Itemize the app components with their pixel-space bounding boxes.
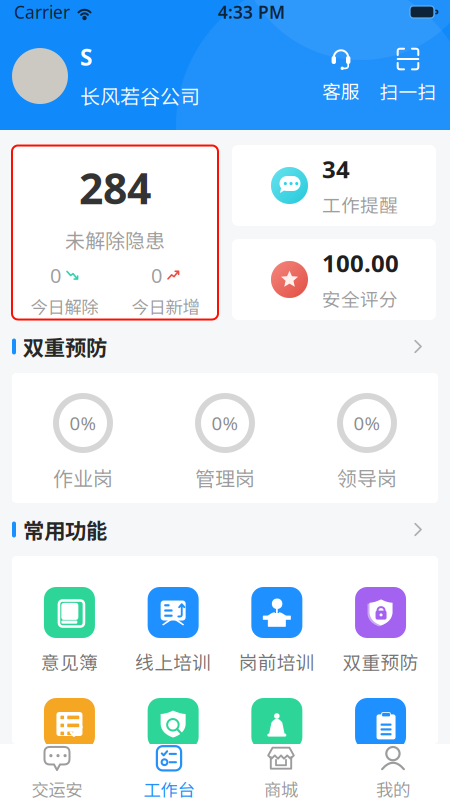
staticText: 4:33 PM [218, 0, 285, 23]
staticText: 双重预防 [23, 331, 107, 362]
button[interactable]: 我的 [337, 744, 449, 800]
button[interactable]: 双重预防 [329, 587, 432, 675]
staticText: 0% [353, 411, 380, 435]
staticText: 安全评分 [322, 285, 398, 312]
staticText: 安全检查 [343, 759, 419, 786]
staticText: 工作台 [143, 776, 194, 800]
staticText: 意见反馈 [31, 759, 107, 786]
staticText: 未解除隐患 [65, 225, 165, 254]
staticText: S [80, 42, 92, 72]
staticText: 商城 [264, 776, 298, 800]
staticText: 100.00 [322, 247, 399, 279]
button[interactable]: 应急管理 [225, 698, 329, 786]
button[interactable]: 商城 [225, 744, 337, 800]
staticText: 客服 [322, 77, 360, 104]
staticText: 0% [211, 411, 238, 435]
button[interactable]: 隐患排查 [121, 698, 225, 786]
staticText: 工作提醒 [322, 191, 398, 218]
button[interactable]: 意见簿 [18, 587, 121, 675]
staticText: 交运安 [31, 776, 82, 800]
staticText: 长风若谷公司 [80, 81, 200, 110]
button[interactable]: 工作台 [113, 744, 225, 800]
staticText: 34 [322, 153, 350, 185]
button[interactable]: 284 [12, 145, 218, 319]
button[interactable]: 线上培训 [121, 587, 225, 675]
staticText: 领导岗 [337, 463, 397, 492]
staticText: 0% [69, 411, 96, 435]
staticText: 作业岗 [53, 463, 113, 492]
staticText: 扫一扫 [379, 77, 436, 104]
staticText: 0 [151, 262, 162, 289]
staticText: 284 [79, 159, 151, 216]
staticText: 应急管理 [239, 759, 315, 786]
button[interactable]: 安全检查 [329, 698, 432, 786]
button[interactable]: 岗前培训 [225, 587, 329, 675]
staticText: 今日解除 [30, 293, 98, 319]
staticText: 我的 [376, 776, 410, 800]
button[interactable]: 双重预防 [0, 320, 450, 373]
staticText: 隐患排查 [135, 759, 211, 786]
button[interactable]: 常用功能 [0, 503, 450, 556]
staticText: 岗前培训 [239, 648, 315, 675]
staticText: 线上培训 [135, 648, 211, 675]
button[interactable]: 交运安 [1, 744, 113, 800]
staticText: 今日新增 [131, 293, 199, 319]
button[interactable]: 意见反馈 [18, 698, 121, 786]
button[interactable]: 100.00 [232, 239, 436, 320]
button[interactable]: 34 [232, 145, 436, 226]
button[interactable]: 客服 [318, 48, 364, 104]
staticText: 常用功能 [23, 514, 107, 545]
staticText: 双重预防 [343, 648, 419, 675]
button[interactable]: 扫一扫 [378, 47, 438, 104]
staticText: 意见簿 [41, 648, 98, 675]
staticText: 0 [50, 262, 61, 289]
staticText: 管理岗 [195, 463, 255, 492]
staticText: Carrier [14, 0, 70, 23]
